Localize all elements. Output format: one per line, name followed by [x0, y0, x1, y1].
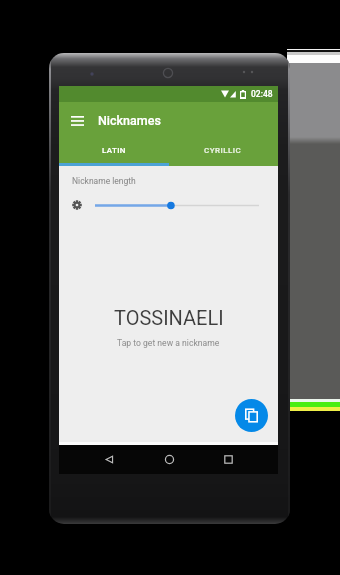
button[interactable]: Home [159, 445, 179, 474]
button[interactable]: CYRILLIC [168, 138, 278, 163]
button[interactable] [91, 197, 263, 214]
button[interactable]: LATIN [59, 138, 168, 163]
staticText: CYRILLIC [204, 146, 242, 155]
button[interactable]: Back [99, 445, 119, 474]
staticText: Nicknames [98, 113, 161, 128]
button[interactable]: Copy nickname [235, 399, 268, 432]
button[interactable]: Recent apps [218, 445, 238, 474]
staticText: 02:48 [251, 89, 273, 99]
button[interactable]: Open navigation drawer [64, 107, 91, 134]
staticText: TOSSINAELI [114, 306, 224, 329]
staticText: Tap to get new a nickname [117, 338, 220, 348]
button[interactable]: Settings [70, 198, 84, 212]
staticText: Nickname length [72, 176, 136, 186]
staticText: LATIN [102, 146, 126, 155]
